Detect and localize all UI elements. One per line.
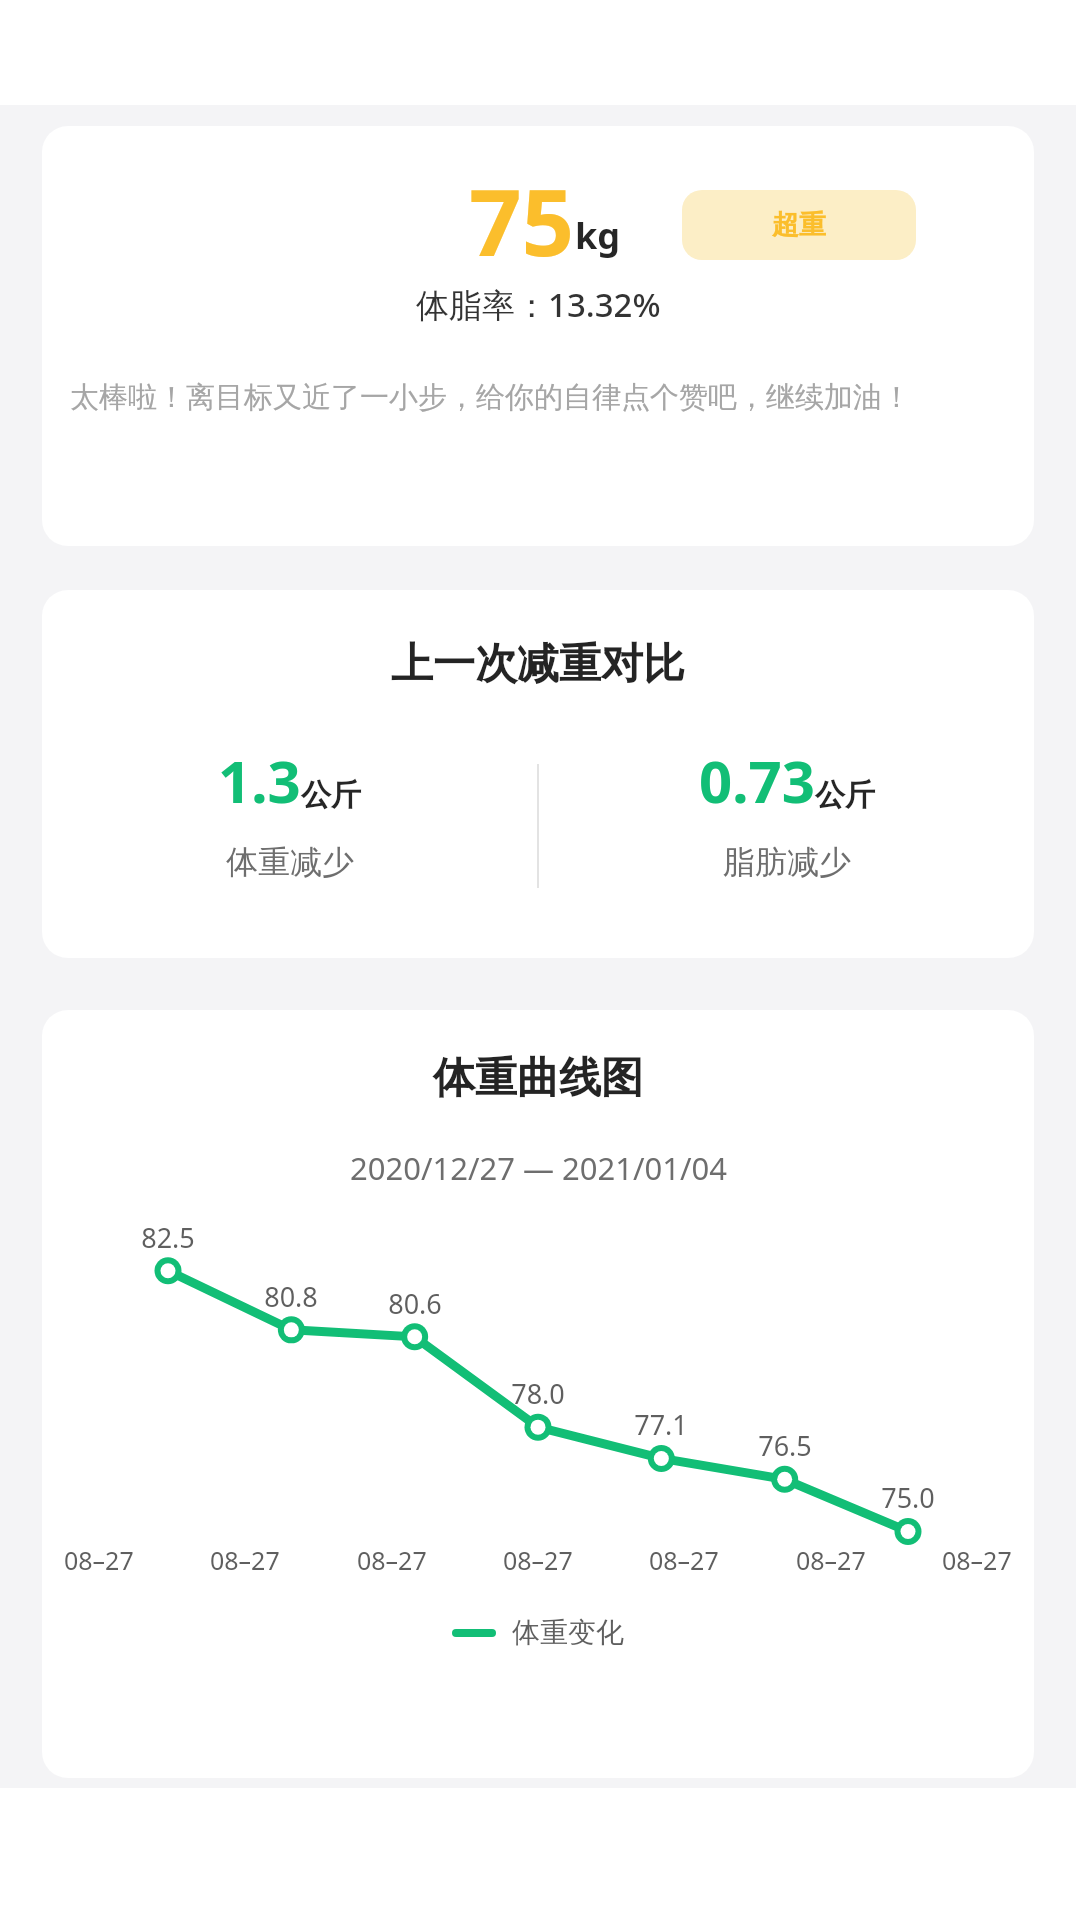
- staticText: 超重: [772, 208, 826, 242]
- staticText: 75: [469, 158, 575, 270]
- staticText: 08–27: [210, 1543, 280, 1577]
- staticText: 75.0: [860, 1479, 956, 1516]
- button[interactable]: 体重曲线图: [42, 1010, 1034, 1778]
- staticText: 08–27: [357, 1543, 427, 1577]
- button[interactable]: 上一次减重对比: [42, 590, 1034, 958]
- staticText: 78.0: [490, 1375, 586, 1412]
- staticText: 2020/12/27 — 2021/01/04: [350, 1147, 727, 1189]
- button[interactable]: 75: [42, 126, 1034, 546]
- staticText: 太棒啦！离目标又近了一小步，给你的自律点个赞吧，继续加油！: [70, 379, 1006, 416]
- staticText: 76.5: [737, 1427, 833, 1464]
- staticText: 08–27: [796, 1543, 866, 1577]
- staticText: 体重曲线图: [433, 1052, 643, 1105]
- staticText: 体重变化: [512, 1615, 624, 1650]
- staticText: 0.73: [699, 741, 815, 820]
- button[interactable]: 1.3: [42, 741, 537, 911]
- staticText: 08–27: [649, 1543, 719, 1577]
- staticText: 1.3: [218, 741, 301, 820]
- staticText: 82.5: [120, 1219, 216, 1256]
- staticText: kg: [575, 211, 621, 260]
- staticText: 08–27: [64, 1543, 134, 1577]
- staticText: 体脂率：13.32%: [416, 282, 661, 327]
- staticText: 脂肪减少: [723, 842, 851, 882]
- staticText: 公斤: [815, 776, 875, 814]
- staticText: 08–27: [503, 1543, 573, 1577]
- button[interactable]: 0.73: [539, 741, 1034, 911]
- staticText: 公斤: [301, 776, 361, 814]
- staticText: 77.1: [613, 1406, 709, 1443]
- staticText: 08–27: [942, 1543, 1012, 1577]
- staticText: 80.8: [243, 1278, 339, 1315]
- staticText: 体重减少: [226, 842, 354, 882]
- button[interactable]: 超重: [682, 190, 916, 260]
- staticText: 80.6: [367, 1285, 463, 1322]
- staticText: 上一次减重对比: [391, 638, 685, 691]
